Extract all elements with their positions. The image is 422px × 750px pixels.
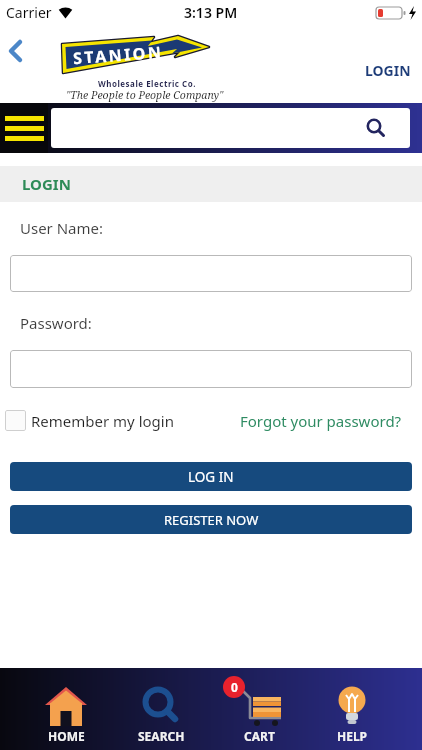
button[interactable]	[51, 108, 410, 148]
staticText: HELP	[337, 728, 368, 744]
button[interactable]: Remember my login	[0, 410, 174, 431]
staticText: LOG IN	[188, 468, 234, 486]
button[interactable]: CART	[219, 686, 299, 744]
button[interactable]: SEARCH	[121, 686, 201, 744]
staticText: LOGIN	[22, 174, 71, 194]
button[interactable]: LOG IN	[10, 462, 412, 491]
button[interactable]	[10, 255, 412, 292]
staticText: Wholesale Electric Co.	[98, 78, 196, 89]
button[interactable]	[10, 350, 412, 388]
button[interactable]	[0, 103, 48, 153]
button[interactable]: HOME	[26, 686, 106, 744]
button[interactable]: REGISTER NOW	[10, 505, 412, 534]
button[interactable]: LOGIN	[365, 61, 411, 80]
staticText: Remember my login	[31, 411, 174, 431]
staticText: 3:13 PM	[184, 3, 238, 22]
button[interactable]: Forgot your password?	[240, 411, 422, 431]
button[interactable]	[2, 35, 28, 67]
staticText: CART	[244, 728, 275, 744]
staticText: HOME	[48, 728, 85, 744]
button[interactable]: HELP	[312, 686, 392, 744]
staticText: Carrier	[6, 3, 52, 22]
staticText: Forgot your password?	[240, 411, 402, 431]
staticText: REGISTER NOW	[164, 511, 259, 529]
staticText: STANION	[72, 41, 165, 69]
staticText: SEARCH	[138, 728, 185, 744]
staticText: User Name:	[20, 218, 104, 238]
staticText: 0	[231, 679, 238, 695]
staticText: LOGIN	[365, 61, 411, 80]
staticText: Password:	[20, 313, 92, 333]
staticText: "The People to People Company"	[66, 88, 224, 102]
